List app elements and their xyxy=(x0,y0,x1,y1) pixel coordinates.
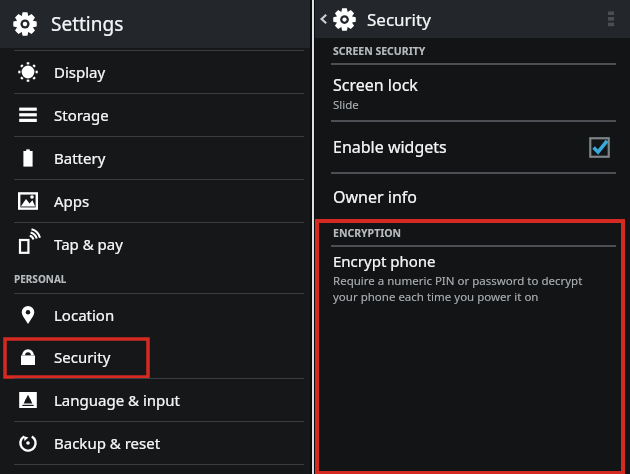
button[interactable]: Display xyxy=(0,51,310,93)
staticText: Owner info xyxy=(333,186,417,208)
button[interactable]: Owner info xyxy=(315,174,630,220)
staticText: Screen lock xyxy=(333,74,418,96)
button[interactable]: Enable widgets xyxy=(315,122,630,172)
button[interactable]: Settings xyxy=(0,0,310,48)
staticText: SCREEN SECURITY xyxy=(333,44,426,58)
staticText: Battery xyxy=(54,148,106,168)
staticText: ENCRYPTION xyxy=(333,226,402,240)
button[interactable]: Security xyxy=(0,336,310,378)
button[interactable]: Battery xyxy=(0,137,310,179)
button[interactable]: Encrypt phone xyxy=(315,247,630,309)
staticText: PERSONAL xyxy=(14,272,67,286)
staticText: your phone each time you power it on xyxy=(333,289,539,305)
staticText: Location xyxy=(54,305,115,325)
staticText: Settings xyxy=(51,11,124,37)
staticText: Storage xyxy=(54,105,109,125)
staticText: Display xyxy=(54,62,106,82)
staticText: Language & input xyxy=(54,390,180,410)
button[interactable]: Language & input xyxy=(0,379,310,421)
button[interactable]: Screen lock xyxy=(315,65,630,120)
staticText: Tap & pay xyxy=(54,234,123,254)
button[interactable]: Tap & pay xyxy=(0,223,310,265)
button[interactable]: Back xyxy=(315,0,357,38)
button[interactable]: Backup & reset xyxy=(0,422,310,464)
button[interactable]: More options xyxy=(592,0,630,38)
staticText: Backup & reset xyxy=(54,433,161,453)
staticText: Enable widgets xyxy=(333,136,447,158)
button[interactable]: Apps xyxy=(0,180,310,222)
button[interactable]: Location xyxy=(0,294,310,336)
staticText: Apps xyxy=(54,191,90,211)
button[interactable]: Storage xyxy=(0,94,310,136)
staticText: Require a numeric PIN or password to dec… xyxy=(333,273,583,289)
staticText: Encrypt phone xyxy=(333,251,436,271)
staticText: Slide xyxy=(333,97,359,113)
staticText: Security xyxy=(54,347,111,367)
staticText: Security xyxy=(367,8,431,31)
